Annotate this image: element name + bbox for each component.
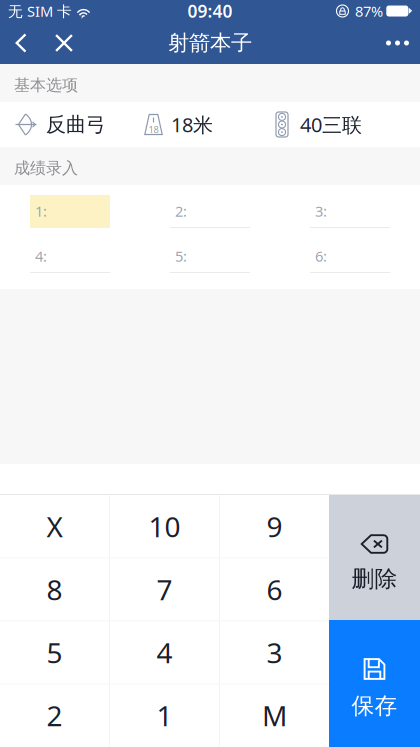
button[interactable]: 18 — [140, 102, 276, 147]
staticText: 5 — [46, 634, 62, 671]
button[interactable]: 返回 — [0, 22, 42, 64]
staticText: 40三联 — [300, 111, 362, 138]
button[interactable]: 更多 — [375, 22, 420, 64]
staticText: 18 — [148, 123, 158, 136]
staticText: 6 — [266, 571, 282, 608]
staticText: 87% — [355, 1, 383, 21]
staticText: 2: — [175, 201, 187, 221]
button[interactable]: 1: — [30, 195, 110, 228]
button[interactable]: 40三联 — [276, 102, 420, 147]
button[interactable]: M — [220, 684, 329, 746]
staticText: 2 — [46, 697, 62, 734]
button[interactable]: 4 — [110, 621, 219, 683]
staticText: M — [262, 697, 287, 734]
staticText: 1: — [35, 201, 47, 221]
staticText: 18米 — [171, 111, 213, 138]
button[interactable]: 9 — [220, 495, 329, 557]
button[interactable]: X — [0, 495, 109, 557]
staticText: 6: — [315, 246, 327, 266]
staticText: 10 — [148, 508, 180, 545]
button[interactable]: 反曲弓 — [0, 102, 140, 147]
staticText: 基本选项 — [14, 75, 78, 95]
staticText: 删除 — [351, 565, 397, 593]
button[interactable]: 5: — [170, 240, 250, 273]
staticText: 5: — [175, 246, 187, 266]
staticText: 反曲弓 — [46, 112, 106, 137]
button[interactable]: 10 — [110, 495, 219, 557]
button[interactable]: 3 — [220, 621, 329, 683]
button[interactable]: 7 — [110, 558, 219, 620]
staticText: 4 — [156, 634, 172, 671]
staticText: 3: — [315, 201, 327, 221]
button[interactable]: 6 — [220, 558, 329, 620]
button[interactable]: 保存 — [329, 620, 420, 747]
staticText: 4: — [35, 246, 47, 266]
button[interactable]: 删除 — [329, 495, 420, 620]
staticText: 7 — [156, 571, 172, 608]
button[interactable]: 5 — [0, 621, 109, 683]
button[interactable]: 1 — [110, 684, 219, 746]
button[interactable]: 4: — [30, 240, 110, 273]
staticText: 无 SIM 卡 — [8, 1, 72, 21]
staticText: X — [46, 508, 62, 545]
staticText: 09:40 — [187, 0, 232, 22]
staticText: 8 — [46, 571, 62, 608]
button[interactable]: 2 — [0, 684, 109, 746]
button[interactable]: 6: — [310, 240, 390, 273]
staticText: 9 — [266, 508, 282, 545]
staticText: 3 — [266, 634, 282, 671]
staticText: 射箭本子 — [168, 30, 252, 56]
staticText: 1 — [156, 697, 172, 734]
button[interactable]: 2: — [170, 195, 250, 228]
staticText: 成绩录入 — [14, 158, 78, 178]
button[interactable]: 关闭 — [42, 22, 86, 64]
button[interactable]: 3: — [310, 195, 390, 228]
staticText: 保存 — [351, 692, 397, 720]
button[interactable]: 8 — [0, 558, 109, 620]
